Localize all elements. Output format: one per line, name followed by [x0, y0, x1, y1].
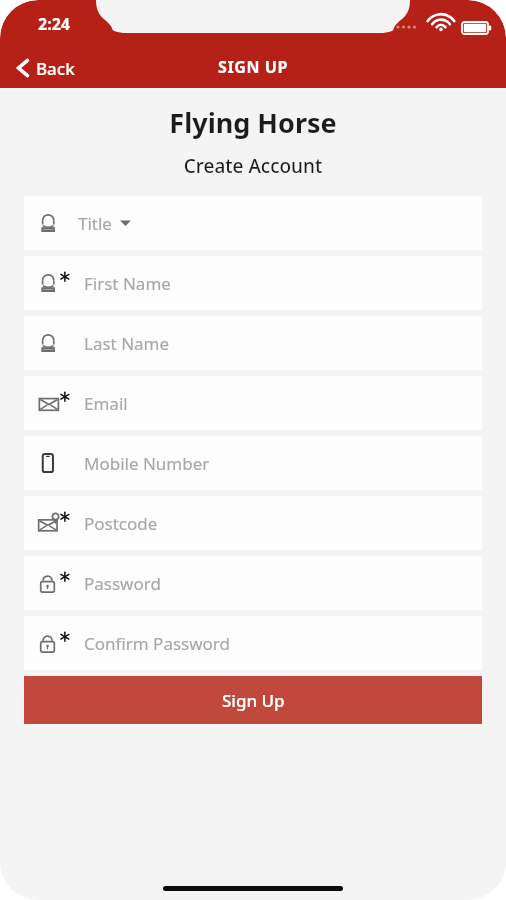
staticText: Flying Horse: [0, 104, 506, 141]
staticText: Confirm Password: [84, 632, 230, 655]
button[interactable]: Confirm Password: [24, 616, 482, 670]
staticText: Mobile Number: [84, 452, 210, 475]
staticText: Title: [78, 212, 112, 235]
staticText: Postcode: [84, 512, 158, 535]
staticText: Last Name: [84, 332, 170, 355]
staticText: First Name: [84, 272, 171, 295]
button[interactable]: Postcode: [24, 496, 482, 550]
button[interactable]: Password: [24, 556, 482, 610]
staticText: Email: [84, 392, 128, 415]
button[interactable]: Sign Up: [24, 676, 482, 724]
staticText: SIGN UP: [0, 56, 506, 78]
staticText: 2:24: [38, 13, 70, 35]
button[interactable]: Mobile Number: [24, 436, 482, 490]
staticText: Sign Up: [222, 689, 285, 712]
staticText: Create Account: [0, 153, 506, 179]
button[interactable]: Last Name: [24, 316, 482, 370]
button[interactable]: Title: [24, 196, 482, 250]
staticText: Password: [84, 572, 161, 595]
button[interactable]: Email: [24, 376, 482, 430]
staticText: Back: [36, 57, 75, 80]
button[interactable]: First Name: [24, 256, 482, 310]
button[interactable]: Back: [10, 50, 81, 86]
